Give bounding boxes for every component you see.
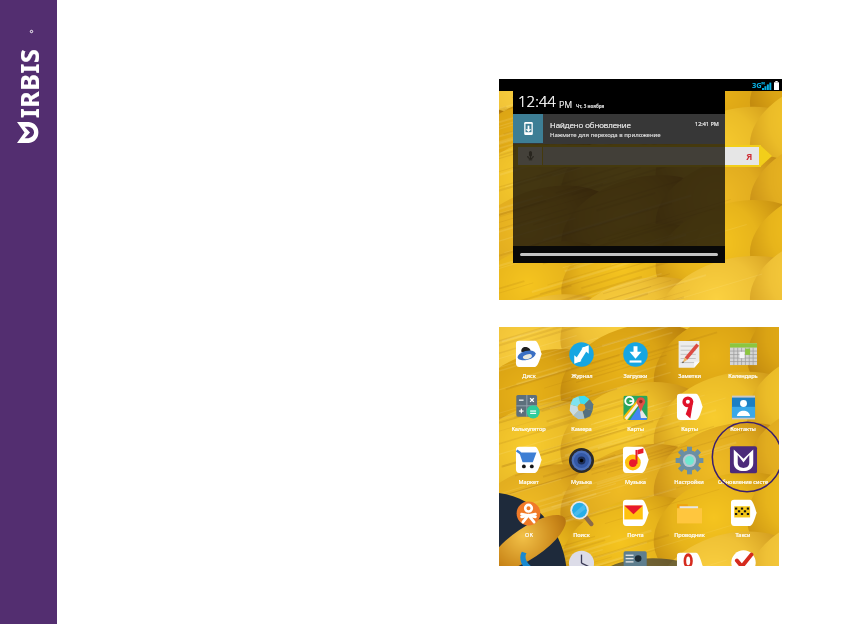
staticText: Обновление систе xyxy=(718,478,768,486)
staticText: Музыка xyxy=(625,478,646,486)
button[interactable]: Калькулятор xyxy=(502,391,555,439)
button[interactable]: Найдено обновление xyxy=(513,114,725,144)
button[interactable]: Журнал xyxy=(555,338,608,386)
button[interactable]: Поиск xyxy=(555,497,608,545)
button[interactable]: Проводник xyxy=(662,497,716,545)
staticText: Настройки xyxy=(674,478,704,486)
staticText: Поиск xyxy=(573,531,590,539)
staticText: Контакты xyxy=(730,425,756,433)
staticText: PM xyxy=(559,98,573,110)
button[interactable]: Камера xyxy=(555,391,608,439)
staticText: Музыка xyxy=(571,478,592,486)
staticText: 12:44 xyxy=(518,91,556,111)
staticText: Нажмите для перехода в приложение xyxy=(550,131,661,139)
staticText: Найдено обновление xyxy=(550,119,631,130)
staticText: Карты xyxy=(681,425,698,433)
button[interactable]: Заметки xyxy=(662,338,716,386)
staticText: Я xyxy=(746,150,753,163)
button[interactable]: Карты xyxy=(662,391,716,439)
staticText: IRBIS xyxy=(12,48,40,118)
staticText: 12:41 PM xyxy=(695,120,719,127)
staticText: Камера xyxy=(571,425,592,433)
button[interactable]: Карты xyxy=(608,391,662,439)
staticText: 3G xyxy=(752,80,762,90)
staticText: Загрузки xyxy=(623,372,648,380)
other: IRBIS logo xyxy=(12,41,40,125)
button[interactable]: Загрузки xyxy=(608,338,662,386)
button[interactable]: Почта xyxy=(608,497,662,545)
button[interactable] xyxy=(555,550,608,566)
button[interactable] xyxy=(502,550,555,566)
button[interactable] xyxy=(662,550,716,566)
button[interactable] xyxy=(608,550,662,566)
staticText: Заметки xyxy=(678,372,701,380)
button[interactable]: Музыка xyxy=(555,444,608,492)
button[interactable] xyxy=(716,550,770,566)
button[interactable]: IRBIS logo xyxy=(0,0,57,624)
staticText: Диск xyxy=(522,372,536,380)
button[interactable]: Диск xyxy=(502,338,555,386)
button[interactable]: Музыка xyxy=(608,444,662,492)
staticText: ОК xyxy=(525,531,533,539)
staticText: Календарь xyxy=(728,372,758,380)
button[interactable]: Я xyxy=(516,145,772,167)
staticText: Почта xyxy=(627,531,644,539)
staticText: Журнал xyxy=(571,372,593,380)
staticText: Такси xyxy=(735,531,751,539)
button[interactable]: Такси xyxy=(716,497,770,545)
staticText: Калькулятор xyxy=(511,425,546,433)
staticText: Чт, 3 ноября xyxy=(576,103,605,109)
button[interactable]: Маркет xyxy=(502,444,555,492)
staticText: Проводник xyxy=(674,531,705,539)
button[interactable]: Календарь xyxy=(716,338,770,386)
button[interactable]: Контакты xyxy=(716,391,770,439)
button[interactable]: ОК xyxy=(502,497,555,545)
staticText: Маркет xyxy=(518,478,539,486)
staticText: Карты xyxy=(627,425,644,433)
button[interactable]: Обновление систе xyxy=(716,444,770,492)
button[interactable]: Настройки xyxy=(662,444,716,492)
